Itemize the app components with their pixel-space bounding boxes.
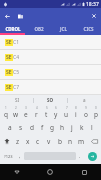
button[interactable]: a <box>4 120 15 134</box>
staticText: j <box>71 123 73 132</box>
button[interactable]: d <box>26 120 37 134</box>
button[interactable]: f <box>37 120 47 134</box>
button[interactable]: m <box>76 134 87 148</box>
staticText: m <box>78 137 85 146</box>
staticText: i <box>75 110 77 119</box>
staticText: C5 <box>13 69 20 76</box>
button[interactable]: 6 <box>51 105 61 120</box>
button[interactable]: OB2 <box>26 24 51 33</box>
button[interactable]: j <box>67 120 77 134</box>
button[interactable]: n <box>65 134 76 148</box>
staticText: 8 <box>75 106 77 110</box>
staticText: 7 <box>66 106 68 110</box>
button[interactable]: SE <box>0 35 101 49</box>
staticText: v <box>47 137 51 146</box>
staticText: C7 <box>13 84 20 91</box>
staticText: C1 <box>13 39 20 46</box>
staticText: SO <box>47 97 54 103</box>
staticText: z <box>16 137 20 146</box>
button[interactable]: . <box>76 148 84 164</box>
button[interactable]: h <box>57 120 67 134</box>
staticText: 9 <box>85 106 87 110</box>
staticText: 1 <box>5 106 7 110</box>
staticText: CICS <box>83 26 94 32</box>
staticText: x <box>26 137 30 146</box>
staticText: q <box>4 110 8 119</box>
staticText: o <box>84 110 88 119</box>
button[interactable]: 4 <box>31 105 41 120</box>
staticText: SE <box>6 84 12 91</box>
staticText: k <box>80 123 84 132</box>
button[interactable]: Home <box>33 164 67 180</box>
button[interactable]: 0 <box>91 105 101 120</box>
staticText: e <box>24 110 28 119</box>
button[interactable]: 1 <box>0 105 11 120</box>
button[interactable]: SI <box>0 95 33 105</box>
staticText: 4 <box>36 106 38 110</box>
button[interactable]: s <box>15 120 26 134</box>
button[interactable]: Close <box>88 10 100 22</box>
button[interactable]: k <box>77 120 87 134</box>
staticText: b <box>58 137 62 146</box>
staticText: SI <box>15 97 19 103</box>
staticText: g <box>50 123 54 132</box>
staticText: SE <box>6 69 12 76</box>
button[interactable]: Dictionary <box>14 10 26 22</box>
button[interactable]: SE <box>0 80 101 94</box>
staticText: SE <box>6 39 12 46</box>
staticText: OB2 <box>34 26 44 32</box>
button[interactable]: Recents <box>67 164 101 180</box>
button[interactable]: , <box>16 148 24 164</box>
button[interactable]: b <box>54 134 65 148</box>
button[interactable]: x <box>23 134 33 148</box>
button[interactable]: 3 <box>21 105 31 120</box>
staticText: . <box>79 153 81 160</box>
button[interactable]: Back <box>0 164 33 180</box>
button[interactable]: 8 <box>71 105 81 120</box>
staticText: w <box>13 110 19 119</box>
button[interactable]: Backspace <box>87 134 101 148</box>
staticText: 6 <box>55 106 57 110</box>
staticText: 0 <box>95 106 97 110</box>
button[interactable]: 2 <box>11 105 21 120</box>
staticText: d <box>30 123 34 132</box>
staticText: 18:37 <box>86 1 99 8</box>
button[interactable]: g <box>47 120 57 134</box>
button[interactable]: SO <box>34 95 67 105</box>
button[interactable]: a <box>68 95 101 105</box>
staticText: c <box>36 137 40 146</box>
button[interactable]: Shift <box>0 134 13 148</box>
staticText: C4 <box>13 54 20 61</box>
button[interactable]: 9 <box>81 105 91 120</box>
staticText: f <box>41 123 44 132</box>
staticText: 3 <box>25 106 27 110</box>
staticText: s <box>19 123 23 132</box>
staticText: 5 <box>46 106 48 110</box>
button[interactable]: 5 <box>41 105 51 120</box>
staticText: JCL <box>60 26 67 32</box>
staticText: p <box>94 110 98 119</box>
button[interactable]: c <box>33 134 43 148</box>
staticText: , <box>19 153 21 160</box>
staticText: r <box>35 110 38 119</box>
button[interactable]: Enter <box>88 152 97 161</box>
staticText: a <box>8 123 12 132</box>
button[interactable]: z <box>13 134 23 148</box>
button[interactable]: ?123 <box>0 148 16 164</box>
button[interactable]: CICS <box>76 24 101 33</box>
staticText: u <box>64 110 69 119</box>
button[interactable]: 7 <box>61 105 71 120</box>
staticText: h <box>60 123 65 132</box>
staticText: y <box>54 110 58 119</box>
staticText: n <box>68 137 73 146</box>
button[interactable]: CDROL <box>0 24 26 33</box>
staticText: a <box>83 97 86 103</box>
staticText: t <box>45 110 48 119</box>
button[interactable]: v <box>43 134 54 148</box>
button[interactable]: JCL <box>51 24 76 33</box>
button[interactable]: l <box>87 120 97 134</box>
button[interactable]: Back <box>1 10 13 22</box>
button[interactable]: SE <box>0 65 101 79</box>
button[interactable]: SE <box>0 50 101 64</box>
